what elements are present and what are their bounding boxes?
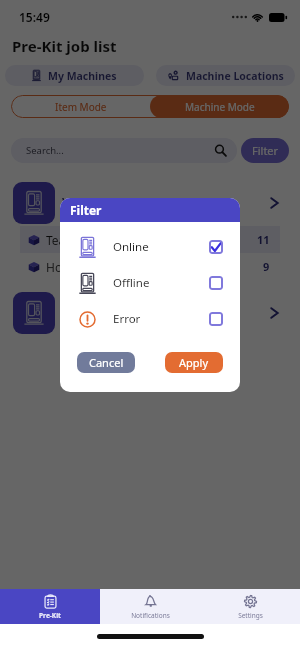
staticText: Error (113, 311, 141, 327)
button[interactable]: VN_MM002 (12, 290, 288, 336)
button[interactable]: Tea (20, 226, 280, 253)
other: Notifications (144, 594, 157, 609)
staticText: Apply (179, 355, 209, 370)
staticText: Cancel (89, 355, 124, 370)
staticText: Hot (46, 259, 67, 275)
staticText: Online (113, 239, 149, 255)
button[interactable]: Notifications (100, 589, 200, 624)
staticText: Notifications (131, 611, 170, 620)
other: Pre-Kit (44, 594, 57, 609)
other: Open (266, 305, 282, 321)
staticText: (Online) (131, 306, 168, 320)
button[interactable]: Hot (20, 253, 280, 280)
other: Settings (244, 594, 257, 609)
staticText: Search... (26, 144, 214, 157)
staticText: Item Mode (55, 100, 107, 114)
staticText: (Offline) (131, 196, 169, 210)
button[interactable]: Apply (165, 352, 223, 373)
button[interactable]: Error (60, 301, 240, 337)
button[interactable]: Machine Locations (156, 65, 295, 86)
button[interactable]: Online (60, 229, 240, 265)
staticText: Filter (252, 143, 279, 158)
staticText: Machine Locations (186, 69, 284, 83)
button[interactable]: Filter (241, 138, 289, 163)
staticText: Pre-Kit job list (12, 36, 117, 56)
button[interactable]: Pre-Kit (0, 589, 100, 624)
button[interactable]: Cancel (77, 352, 135, 373)
button[interactable]: Item Mode (11, 95, 150, 118)
staticText: 15:49 (19, 9, 50, 25)
button[interactable]: My Machines (5, 65, 144, 86)
staticText: Tea (46, 232, 66, 248)
staticText: Filter (70, 202, 102, 218)
button[interactable]: Search... (11, 138, 237, 163)
staticText: Offline (113, 275, 150, 291)
staticText: VN_MM001 (62, 195, 125, 211)
staticText: My Machines (48, 69, 117, 83)
staticText: Machine Mode (185, 100, 255, 114)
staticText: 9 (263, 259, 270, 274)
button[interactable]: Settings (200, 589, 300, 624)
button[interactable]: Machine Mode (150, 95, 289, 118)
button[interactable]: VN_MM001 (12, 180, 288, 226)
staticText: VN_MM002 (62, 305, 125, 321)
staticText: Settings (238, 611, 263, 620)
other: Open (266, 195, 282, 211)
button[interactable]: Offline (60, 265, 240, 301)
other: Search (214, 144, 227, 157)
staticText: Pre-Kit (39, 611, 61, 620)
staticText: 11 (257, 232, 270, 247)
